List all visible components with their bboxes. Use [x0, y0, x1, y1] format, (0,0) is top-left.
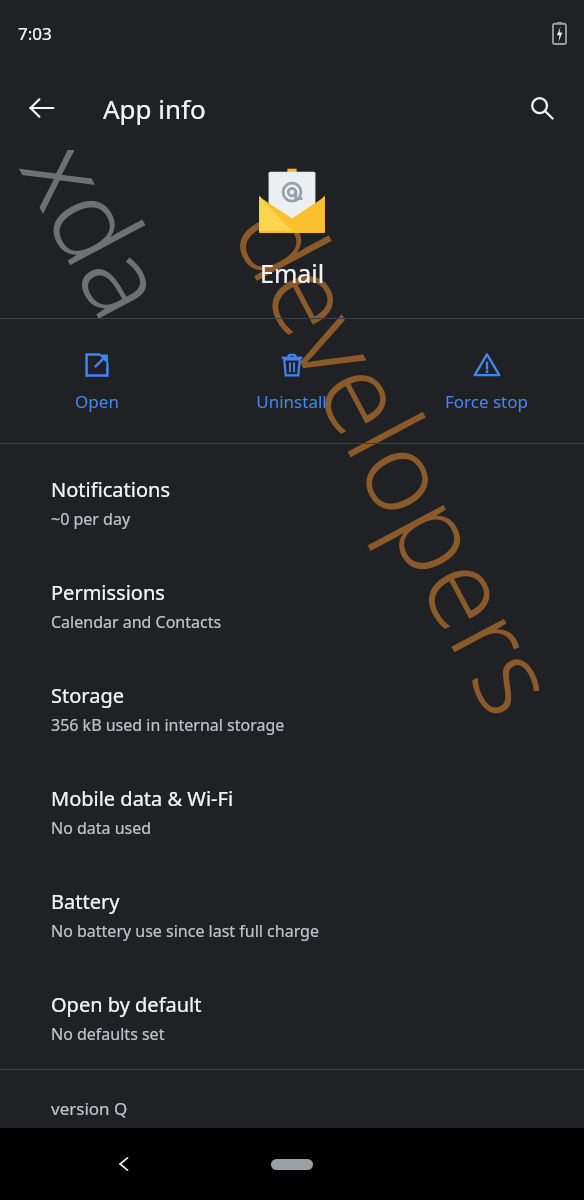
staticText: No defaults set	[51, 1023, 165, 1045]
button[interactable]: Back	[14, 80, 70, 136]
button[interactable]: Notifications	[0, 451, 584, 554]
staticText: Mobile data & Wi-Fi	[51, 785, 234, 812]
staticText: App info	[103, 91, 206, 126]
staticText: Battery	[51, 888, 120, 915]
staticText: Force stop	[445, 390, 528, 413]
staticText: 7:03	[18, 22, 52, 45]
staticText: Open by default	[51, 991, 202, 1018]
button[interactable]: Mobile data & Wi-Fi	[0, 760, 584, 863]
staticText: version Q	[51, 1097, 128, 1120]
button[interactable]: Storage	[0, 657, 584, 760]
staticText: Permissions	[51, 579, 165, 606]
staticText: No data used	[51, 817, 152, 839]
staticText: No battery use since last full charge	[51, 920, 319, 942]
staticText: Email	[260, 256, 325, 290]
staticText: developers	[201, 174, 584, 739]
button[interactable]: Uninstall	[256, 340, 327, 423]
staticText: Uninstall	[256, 390, 327, 413]
staticText: xda	[0, 110, 209, 343]
button[interactable]: Battery	[0, 863, 584, 966]
staticText: Storage	[51, 682, 124, 709]
button[interactable]: Permissions	[0, 554, 584, 657]
staticText: Notifications	[51, 476, 170, 503]
button[interactable]: Open	[75, 340, 119, 423]
button[interactable]: Home	[271, 1159, 313, 1170]
staticText: Open	[75, 390, 119, 413]
button[interactable]: Back	[100, 1140, 148, 1188]
button[interactable]: Force stop	[445, 340, 528, 423]
button[interactable]: Search	[514, 80, 570, 136]
staticText: Calendar and Contacts	[51, 611, 222, 633]
button[interactable]: Open by default	[0, 966, 584, 1069]
staticText: 356 kB used in internal storage	[51, 714, 285, 736]
staticText: ~0 per day	[51, 508, 131, 530]
